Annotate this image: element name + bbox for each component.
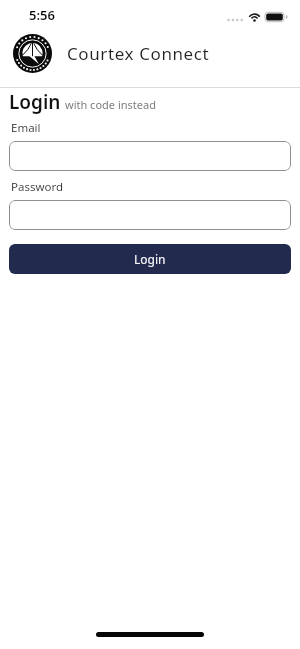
staticText: Email <box>11 120 41 136</box>
button[interactable] <box>9 141 291 171</box>
button[interactable]: Login <box>9 244 291 274</box>
staticText: Password <box>11 179 64 195</box>
staticText: Login <box>9 89 61 115</box>
staticText: Courtex Connect <box>67 42 210 65</box>
staticText: 5:56 <box>29 6 55 24</box>
button[interactable]: with code instead <box>65 97 156 112</box>
staticText: Login <box>134 251 166 267</box>
button[interactable] <box>9 200 291 230</box>
